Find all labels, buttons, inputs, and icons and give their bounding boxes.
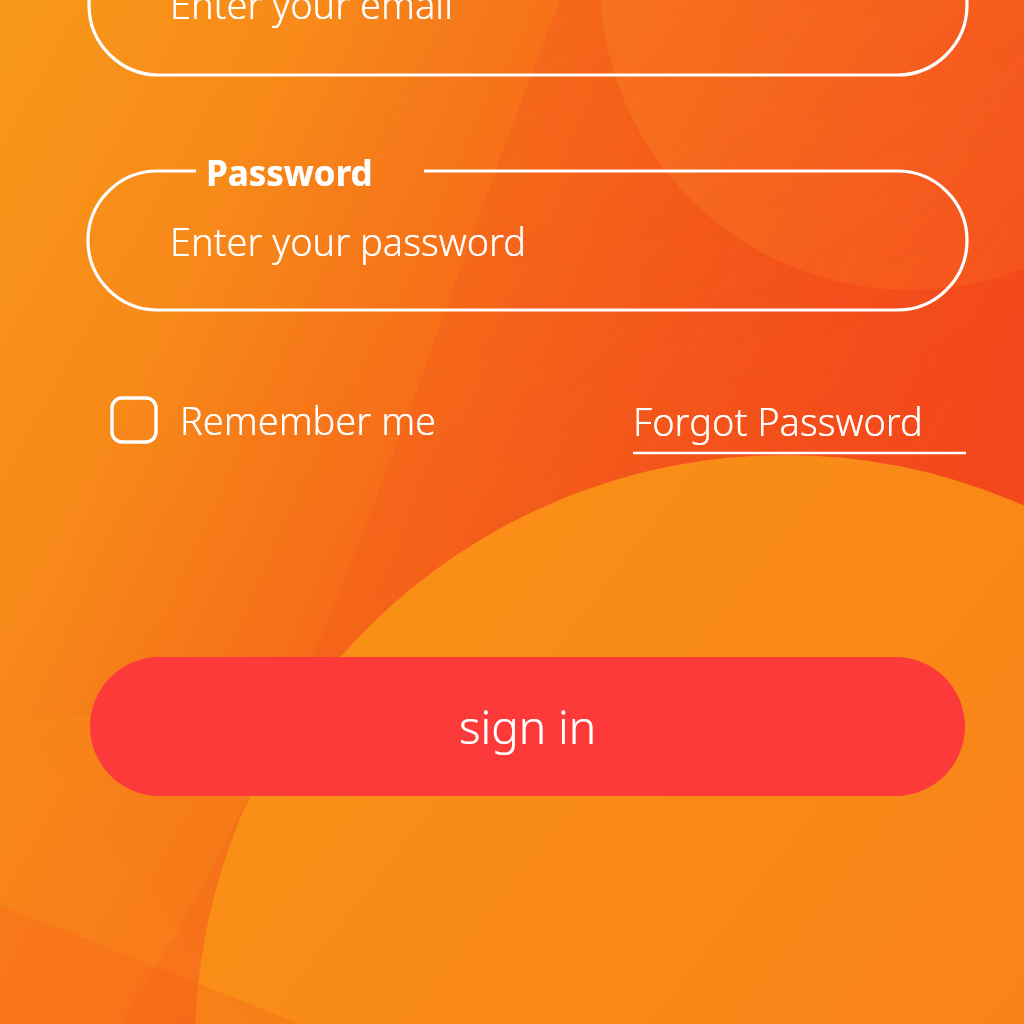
staticText: Remember me [180,394,437,446]
staticText: sign in [459,695,597,758]
button[interactable]: Email field [89,0,967,75]
staticText: Enter your email [170,0,453,30]
button[interactable]: Remember me [108,392,473,448]
staticText: Password [206,149,373,197]
staticText: Forgot Password [633,395,923,447]
button[interactable]: Password field [88,171,967,310]
button[interactable]: sign in [90,657,965,796]
staticText: Enter your password [170,215,527,267]
button[interactable]: Forgot Password [630,392,968,454]
